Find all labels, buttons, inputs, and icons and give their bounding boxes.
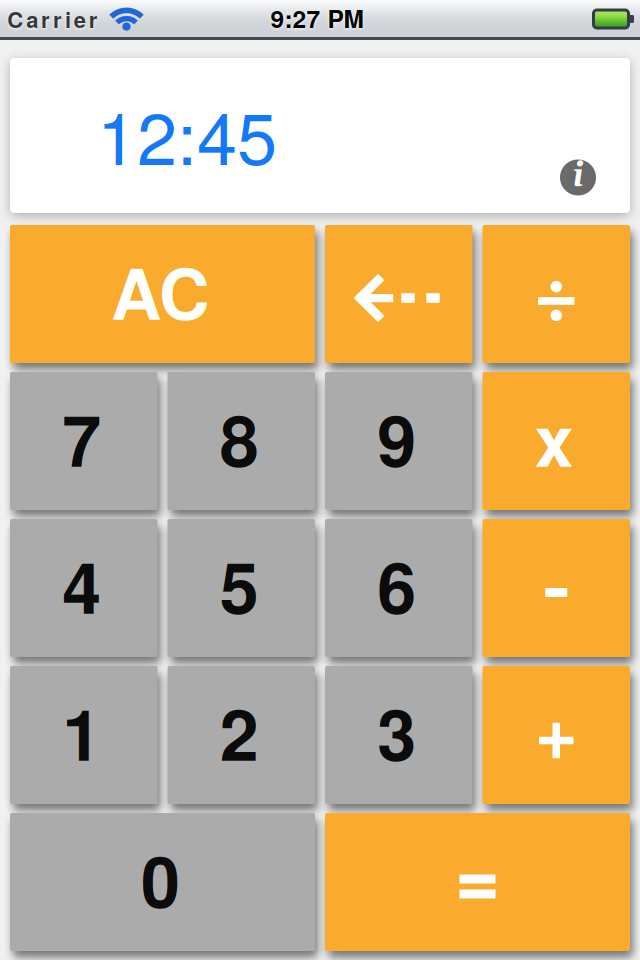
- staticText: AC: [111, 241, 210, 341]
- staticText: 1: [62, 682, 101, 782]
- staticText: 4: [62, 535, 101, 635]
- staticText: 7: [62, 388, 101, 488]
- staticText: x: [535, 388, 574, 488]
- button[interactable]: AC: [10, 225, 315, 363]
- button[interactable]: 8: [167, 372, 315, 510]
- button[interactable]: 2: [167, 666, 315, 804]
- staticText: r: [89, 3, 98, 35]
- staticText: r: [53, 3, 62, 35]
- button[interactable]: Info: [560, 159, 596, 195]
- staticText: 2: [220, 682, 259, 782]
- button[interactable]: Divide: [482, 225, 630, 363]
- button[interactable]: Plus: [482, 666, 630, 804]
- button[interactable]: 7: [10, 372, 157, 510]
- button[interactable]: Minus: [482, 519, 630, 657]
- button[interactable]: 3: [325, 666, 472, 804]
- staticText: r: [41, 3, 50, 35]
- staticText: i: [65, 3, 71, 35]
- button[interactable]: x: [482, 372, 630, 510]
- staticText: e: [74, 3, 86, 35]
- staticText: 6: [377, 535, 416, 635]
- staticText: C: [7, 3, 23, 35]
- button[interactable]: 6: [325, 519, 472, 657]
- staticText: 12:45: [97, 82, 277, 185]
- staticText: i: [572, 155, 584, 198]
- staticText: 9:27 PM: [270, 0, 363, 35]
- staticText: 9: [377, 388, 416, 488]
- button[interactable]: Equals: [325, 813, 630, 951]
- staticText: a: [26, 3, 38, 35]
- staticText: 8: [220, 388, 259, 488]
- button[interactable]: 1: [10, 666, 157, 804]
- button[interactable]: 5: [167, 519, 315, 657]
- staticText: 3: [377, 682, 416, 782]
- button[interactable]: 4: [10, 519, 157, 657]
- staticText: 0: [141, 829, 180, 929]
- staticText: 5: [220, 535, 259, 635]
- button[interactable]: 9: [325, 372, 472, 510]
- button[interactable]: Backspace: [325, 225, 472, 363]
- button[interactable]: 0: [10, 813, 315, 951]
